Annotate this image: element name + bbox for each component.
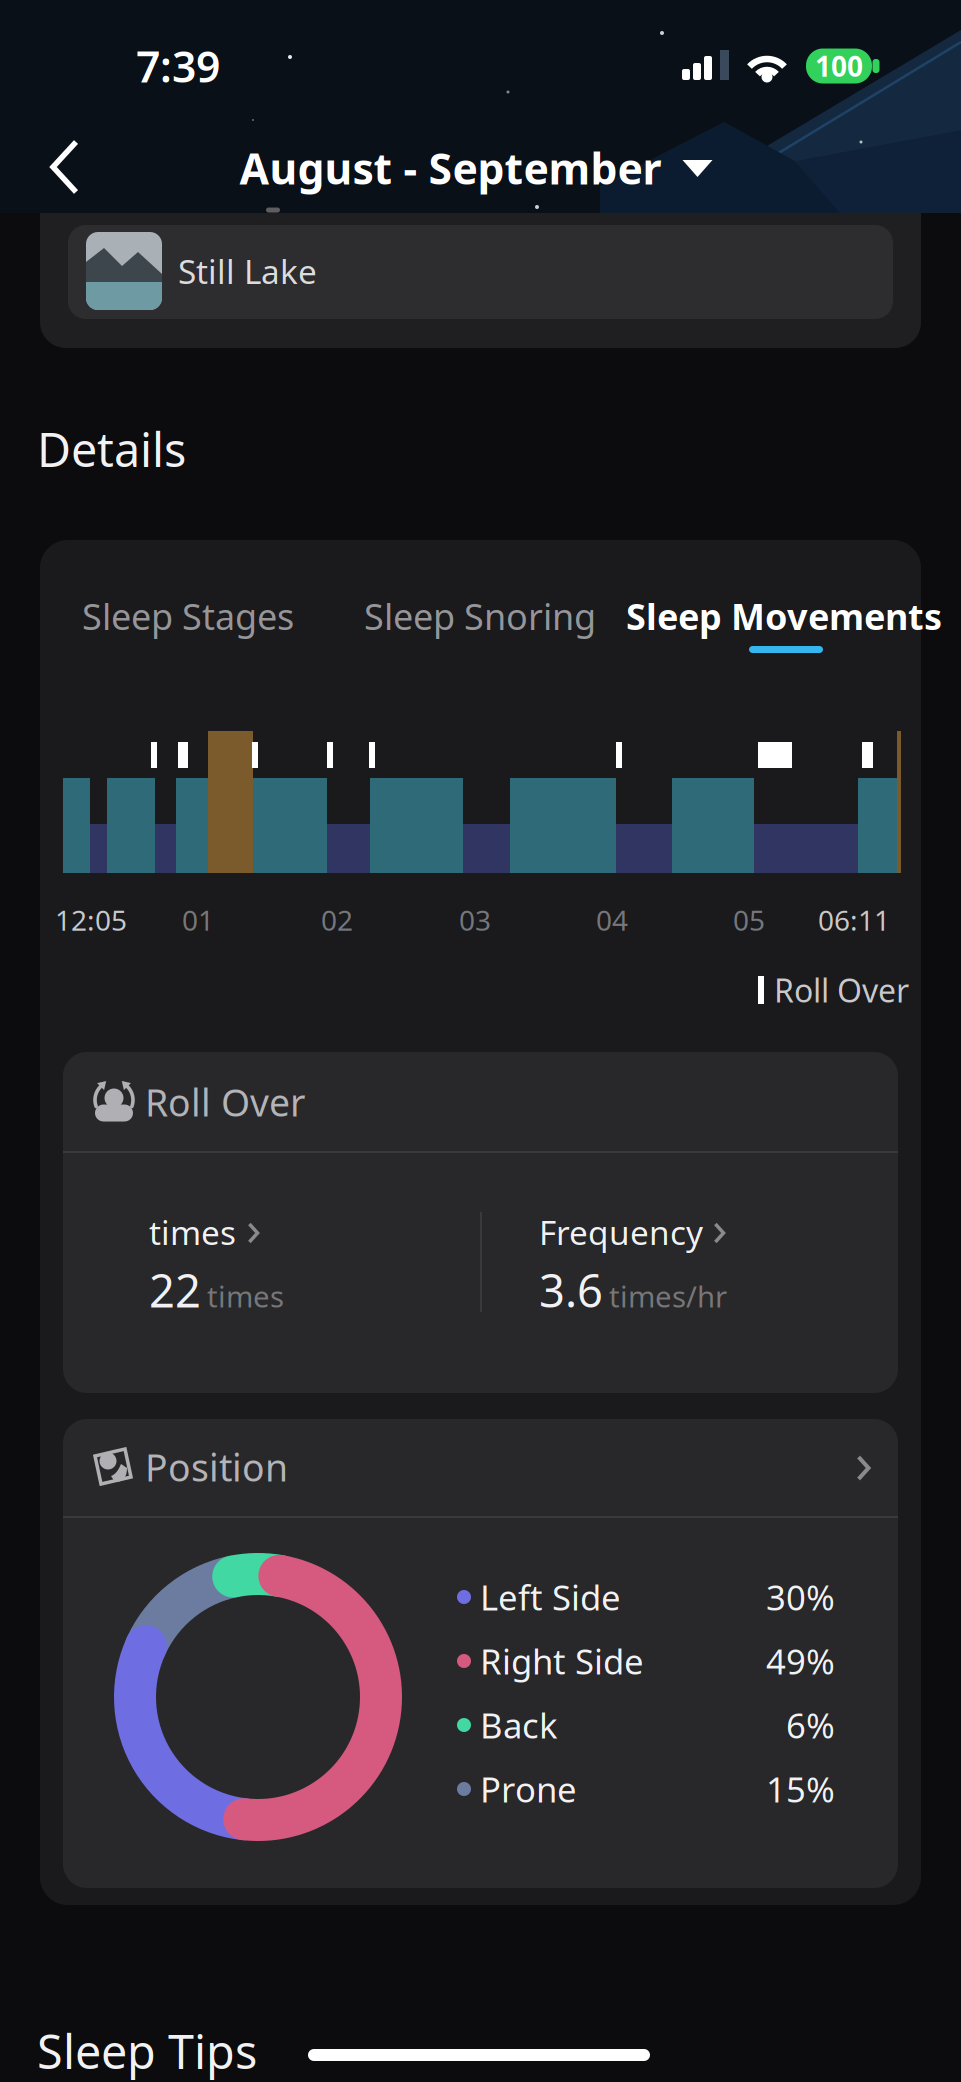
staticText: 30% [766,1574,835,1620]
staticText: Position [145,1442,288,1492]
button[interactable]: Sleep Stages [18,581,358,651]
staticText: Sleep Snoring [364,592,596,640]
button[interactable]: times [149,1212,449,1332]
staticText: Back [480,1702,558,1748]
staticText: Sleep Movements [626,592,942,640]
button[interactable] [34,137,94,197]
staticText: Roll Over [774,969,909,1011]
staticText: August - September [239,140,661,196]
staticText: 01 [182,901,214,939]
button[interactable]: Position [63,1419,898,1517]
staticText: 03 [459,901,491,939]
staticText: Still Lake [178,249,317,293]
staticText: times [149,1210,236,1254]
staticText: 06:11 [818,901,890,939]
staticText: 22 [149,1260,201,1320]
staticText: 7:39 [136,38,220,94]
staticText: Right Side [480,1638,644,1684]
staticText: 6% [786,1702,835,1748]
button[interactable]: Sleep Snoring [310,581,650,651]
staticText: times [207,1276,284,1315]
button[interactable]: Still Lake [68,225,893,319]
staticText: Details [37,418,186,480]
staticText: 3.6 [539,1260,603,1320]
staticText: 100 [815,47,863,85]
staticText: Roll Over [145,1077,305,1127]
staticText: 05 [733,901,765,939]
staticText: 15% [766,1766,835,1812]
staticText: Frequency [539,1210,703,1254]
staticText: Prone [480,1766,577,1812]
button[interactable]: Sleep Movements [574,581,961,651]
staticText: 49% [766,1638,835,1684]
staticText: times/hr [609,1276,727,1315]
staticText: 02 [321,901,353,939]
button[interactable]: Frequency [539,1212,859,1332]
staticText: Sleep Stages [82,592,294,640]
staticText: Sleep Tips [37,2020,257,2082]
staticText: Left Side [480,1574,621,1620]
staticText: 12:05 [55,901,127,939]
staticText: 04 [596,901,628,939]
button[interactable]: August - September [200,134,760,202]
